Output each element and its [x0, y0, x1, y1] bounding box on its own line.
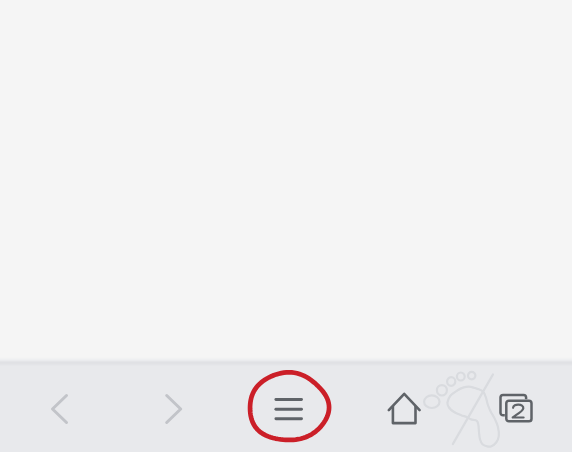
- button[interactable]: Forward: [117, 362, 234, 452]
- button[interactable]: Back: [0, 362, 117, 452]
- button[interactable]: Menu: [234, 362, 344, 452]
- button[interactable]: Tabs: [458, 362, 572, 452]
- button[interactable]: Home: [344, 362, 458, 452]
